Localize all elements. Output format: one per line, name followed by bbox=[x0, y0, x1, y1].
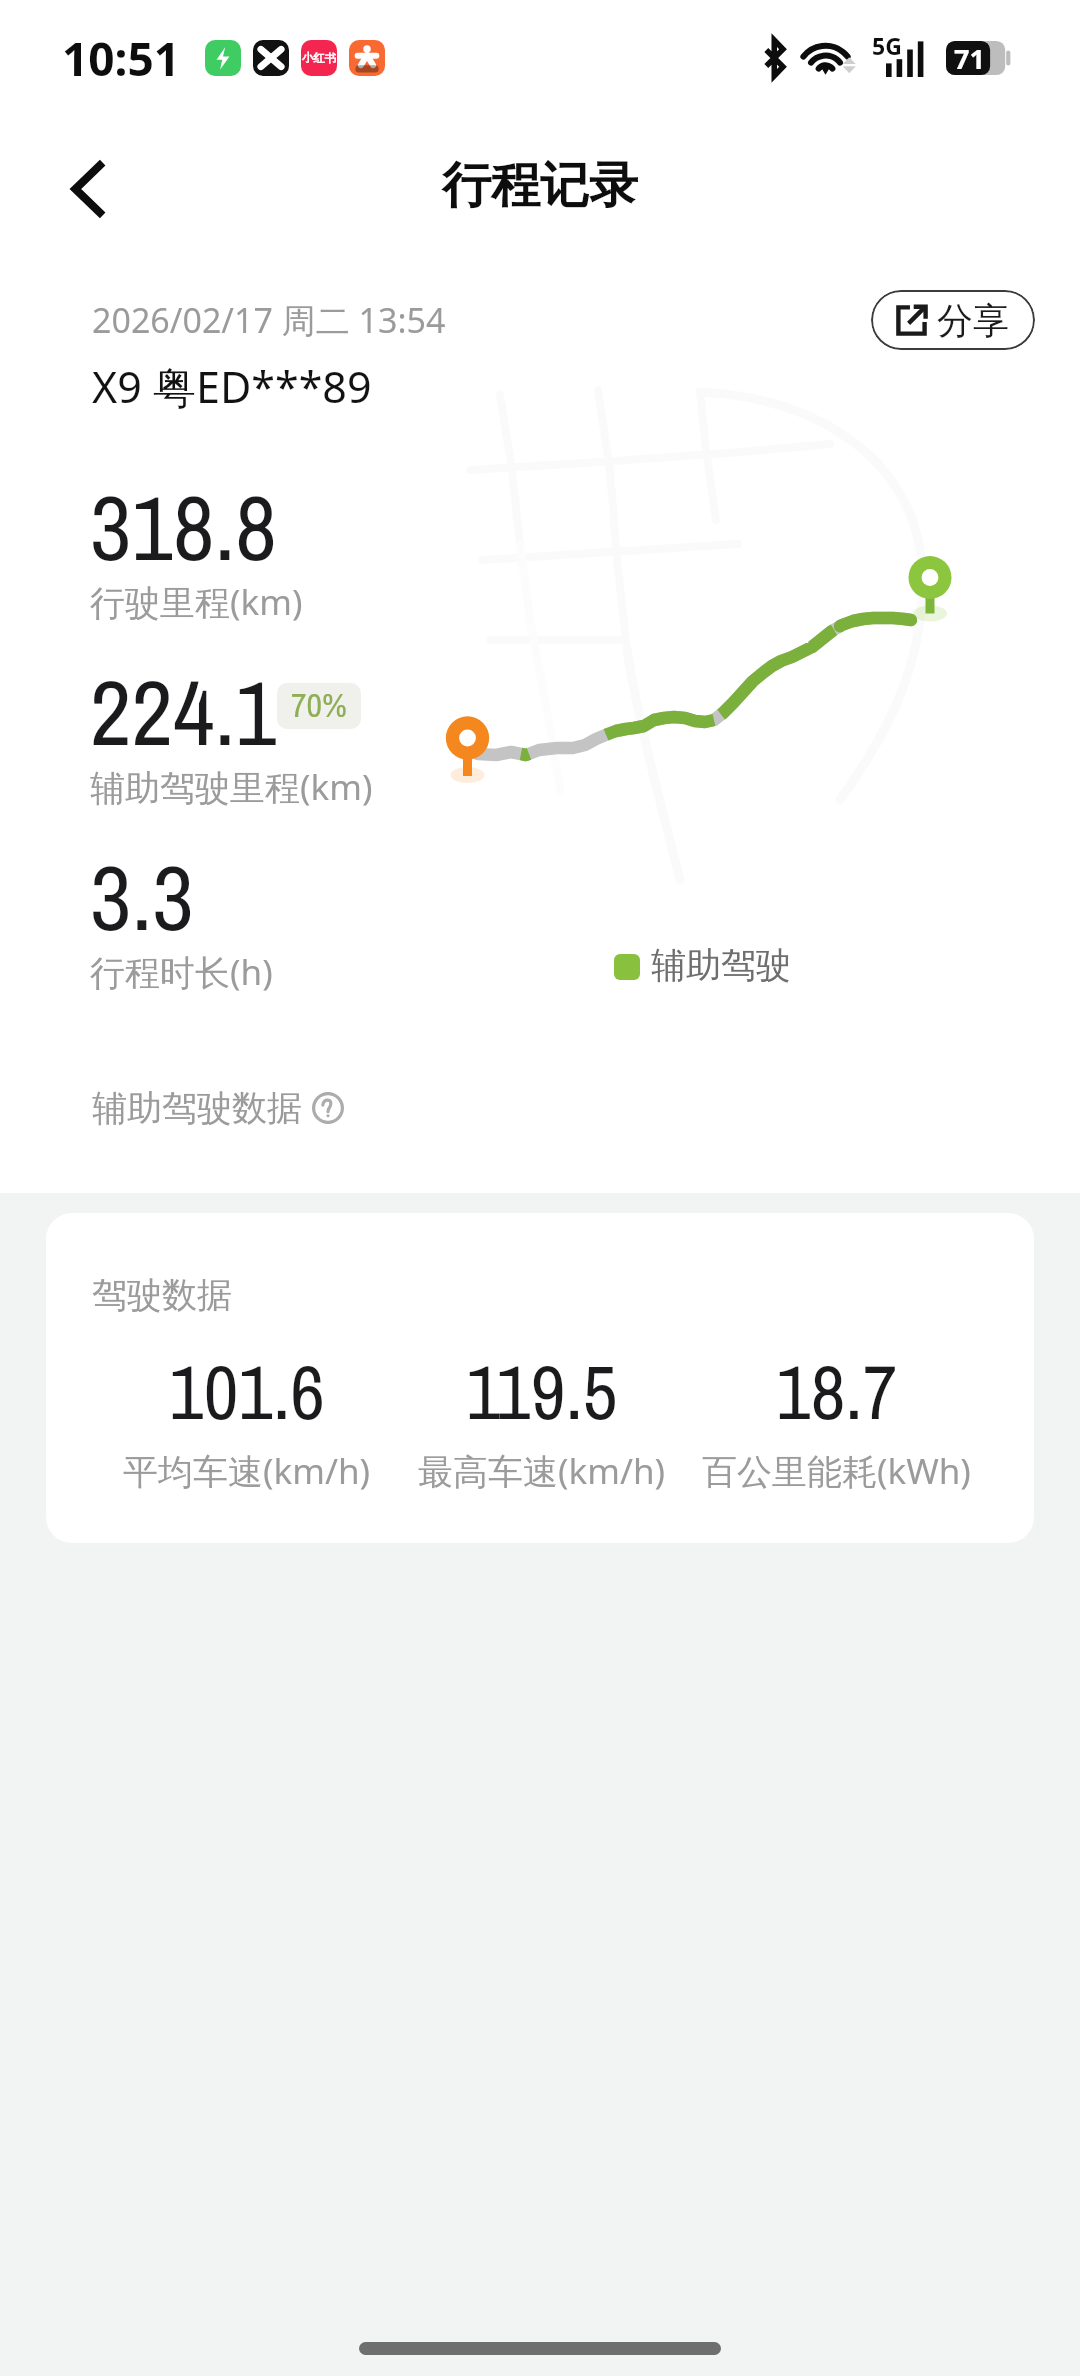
button[interactable]: 辅助驾驶数据 bbox=[92, 1086, 344, 1130]
staticText: 分享 bbox=[937, 298, 1009, 343]
staticText: 10:51 bbox=[62, 27, 181, 90]
staticText: 119.5 bbox=[466, 1340, 618, 1442]
staticText: 驾驶数据 bbox=[92, 1273, 232, 1317]
staticText: 小红书 bbox=[301, 51, 337, 65]
staticText: 2026/02/17 周二 13:54 bbox=[92, 297, 446, 343]
button[interactable]: 分享 bbox=[871, 290, 1035, 350]
staticText: 18.7 bbox=[776, 1340, 898, 1442]
staticText: 71 bbox=[946, 40, 993, 74]
staticText: 101.6 bbox=[169, 1340, 325, 1442]
staticText: X9 粤ED***89 bbox=[92, 357, 372, 416]
staticText: 辅助驾驶数据 bbox=[92, 1086, 302, 1130]
staticText: 70% bbox=[291, 683, 347, 728]
staticText: 行程时长(h) bbox=[90, 948, 273, 996]
staticText: 行驶里程(km) bbox=[90, 578, 303, 626]
staticText: 318.8 bbox=[90, 466, 277, 589]
staticText: 224.1 bbox=[90, 651, 277, 774]
staticText: 5G bbox=[872, 30, 902, 61]
staticText: 辅助驾驶里程(km) bbox=[90, 763, 373, 811]
staticText: 平均车速(km/h) bbox=[123, 1447, 371, 1495]
staticText: 3.3 bbox=[90, 836, 194, 959]
staticText: 百公里能耗(kWh) bbox=[702, 1447, 971, 1495]
staticText: 最高车速(km/h) bbox=[418, 1447, 666, 1495]
button[interactable]: Back bbox=[50, 150, 128, 228]
staticText: 行程记录 bbox=[442, 155, 638, 217]
staticText: 辅助驾驶 bbox=[651, 943, 791, 987]
